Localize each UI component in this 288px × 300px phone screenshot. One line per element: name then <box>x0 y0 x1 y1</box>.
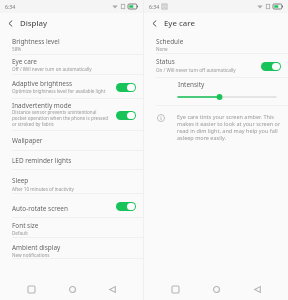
staticText: None <box>156 46 168 52</box>
staticText: Brightness level <box>12 37 60 46</box>
button[interactable]: Status <box>144 54 288 78</box>
button[interactable]: Back <box>144 13 164 33</box>
button[interactable]: Back <box>247 279 267 299</box>
staticText: Eye care <box>164 18 195 29</box>
button[interactable]: Wallpaper <box>0 131 143 151</box>
button[interactable]: Home <box>206 279 226 299</box>
staticText: 58% <box>12 46 22 52</box>
staticText: Eye care <box>12 57 37 66</box>
button[interactable]: Schedule <box>144 35 288 54</box>
button[interactable]: Sleep <box>0 170 143 194</box>
staticText: Default <box>12 230 28 236</box>
staticText: 6:34 <box>149 3 160 10</box>
button[interactable]: Recents <box>21 279 41 299</box>
staticText: On / Will never turn off automatically <box>156 67 236 73</box>
button[interactable]: Home <box>62 279 82 299</box>
staticText: Optimize brightness level for available … <box>12 88 106 94</box>
staticText: Intensity <box>178 80 205 89</box>
staticText: Off / Will never turn on automatically <box>12 66 92 72</box>
button[interactable]: Adaptive brightness <box>0 75 143 99</box>
staticText: Inadvertently mode <box>12 101 72 110</box>
button[interactable]: Toggle <box>116 202 136 211</box>
button[interactable]: Auto-rotate screen <box>0 194 143 218</box>
staticText: After 10 minutes of inactivity <box>12 186 74 192</box>
staticText: Sleep <box>12 176 29 185</box>
staticText: New notifications <box>12 252 50 258</box>
staticText: Auto-rotate screen <box>12 204 68 213</box>
staticText: Eye care tints your screen amber. This m… <box>177 113 281 141</box>
staticText: Wallpaper <box>12 136 43 145</box>
staticText: Schedule <box>156 37 184 46</box>
button[interactable]: Back <box>102 279 122 299</box>
button[interactable]: Back <box>0 13 20 33</box>
button[interactable]: Toggle <box>116 111 136 120</box>
button[interactable]: Toggle <box>116 83 136 92</box>
button[interactable]: Brightness level <box>0 35 143 55</box>
button[interactable]: Inadvertently mode <box>0 99 143 131</box>
staticText: Display <box>20 18 48 29</box>
button[interactable]: LED reminder lights <box>0 151 143 170</box>
button[interactable]: Recents <box>165 279 185 299</box>
staticText: 6:34 <box>5 3 16 10</box>
button[interactable]: Ambient display <box>0 238 143 259</box>
staticText: Adaptive brightness <box>12 79 73 88</box>
button[interactable]: Toggle <box>261 62 281 71</box>
staticText: Distance sensor prevents unintentional p… <box>12 109 108 127</box>
staticText: Font size <box>12 221 39 230</box>
staticText: LED reminder lights <box>12 156 72 165</box>
button[interactable]: Font size <box>0 217 143 238</box>
button[interactable]: Eye care <box>0 55 143 75</box>
staticText: Status <box>156 57 175 66</box>
staticText: Ambient display <box>12 243 61 252</box>
